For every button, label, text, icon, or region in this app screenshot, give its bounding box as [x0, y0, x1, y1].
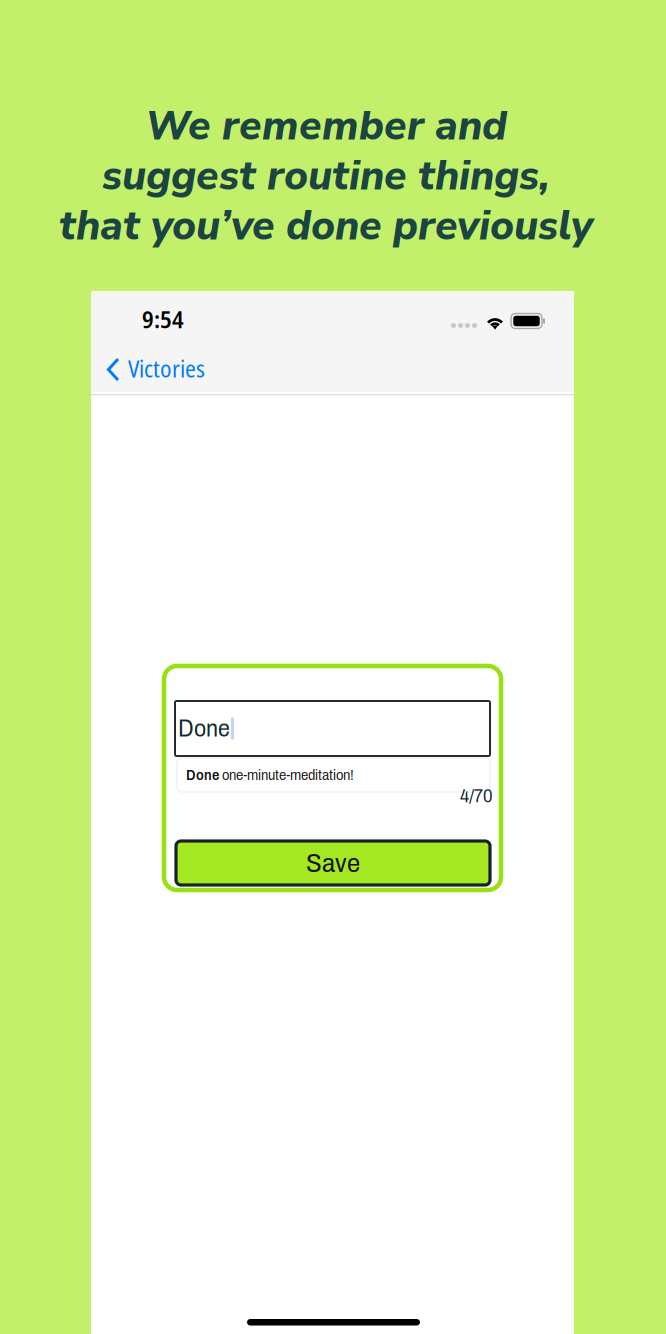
staticText: We remember and — [145, 98, 507, 154]
staticText: Victories — [128, 353, 205, 384]
staticText: 9:54 — [142, 303, 184, 335]
staticText: Done — [186, 767, 219, 783]
staticText: that you’ve done previously — [59, 198, 593, 254]
button[interactable]: Save — [176, 841, 490, 885]
staticText: 4/70 — [460, 786, 493, 806]
staticText: one-minute-meditation! — [219, 767, 354, 783]
staticText: suggest routine things, — [102, 148, 550, 204]
staticText: Done — [178, 715, 230, 741]
button[interactable]: Done — [177, 758, 490, 792]
button[interactable]: Done — [175, 701, 490, 756]
staticText: Save — [306, 848, 360, 877]
button[interactable]: Victories — [91, 351, 215, 392]
